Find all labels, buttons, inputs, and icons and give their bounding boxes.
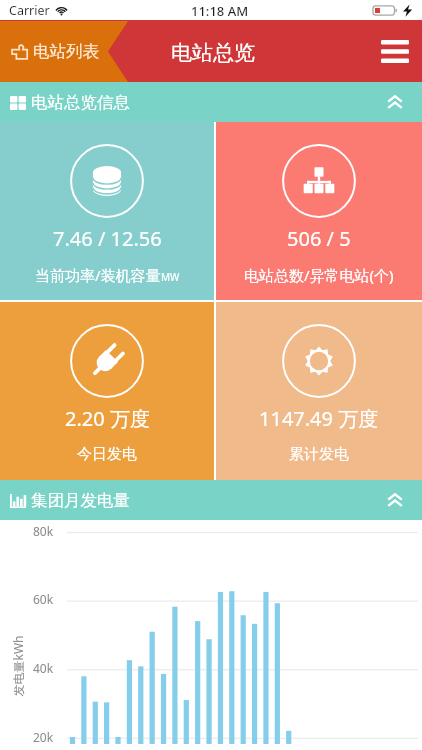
staticText: 电站总览	[171, 40, 255, 66]
staticText: 60k	[33, 591, 54, 607]
button[interactable]: 集团月发电量	[0, 480, 422, 520]
staticText: 发电量kWh	[9, 635, 25, 696]
button[interactable]: 2.20 万度	[0, 302, 214, 480]
staticText: 2.20 万度	[65, 405, 150, 432]
staticText: 电站列表	[33, 41, 99, 62]
staticText: 7.46 / 12.56	[53, 225, 162, 252]
staticText: 今日发电	[77, 445, 137, 464]
staticText: 累计发电	[289, 445, 349, 464]
staticText: 11:18 AM	[191, 2, 249, 20]
staticText: 集团月发电量	[31, 490, 130, 511]
button[interactable]: Menu	[368, 21, 422, 82]
staticText: MW	[161, 270, 180, 284]
button[interactable]: 电站总览信息	[0, 82, 422, 122]
button[interactable]: 506 / 5	[216, 122, 422, 300]
button[interactable]: Collapse section	[367, 480, 422, 520]
button[interactable]: 7.46 / 12.56	[0, 122, 214, 300]
staticText: 20k	[33, 729, 54, 745]
staticText: 1147.49 万度	[259, 405, 379, 432]
button[interactable]: 电站列表	[0, 21, 120, 82]
staticText: 80k	[33, 523, 54, 539]
staticText: Carrier	[9, 2, 50, 19]
staticText: 当前功率/装机容量	[35, 265, 161, 285]
button[interactable]: 1147.49 万度	[216, 302, 422, 480]
staticText: 电站总览信息	[31, 92, 130, 113]
staticText: 506 / 5	[287, 225, 351, 252]
staticText: 40k	[33, 660, 54, 676]
staticText: 电站总数/异常电站(个)	[244, 265, 394, 285]
button[interactable]: Collapse section	[367, 82, 422, 122]
